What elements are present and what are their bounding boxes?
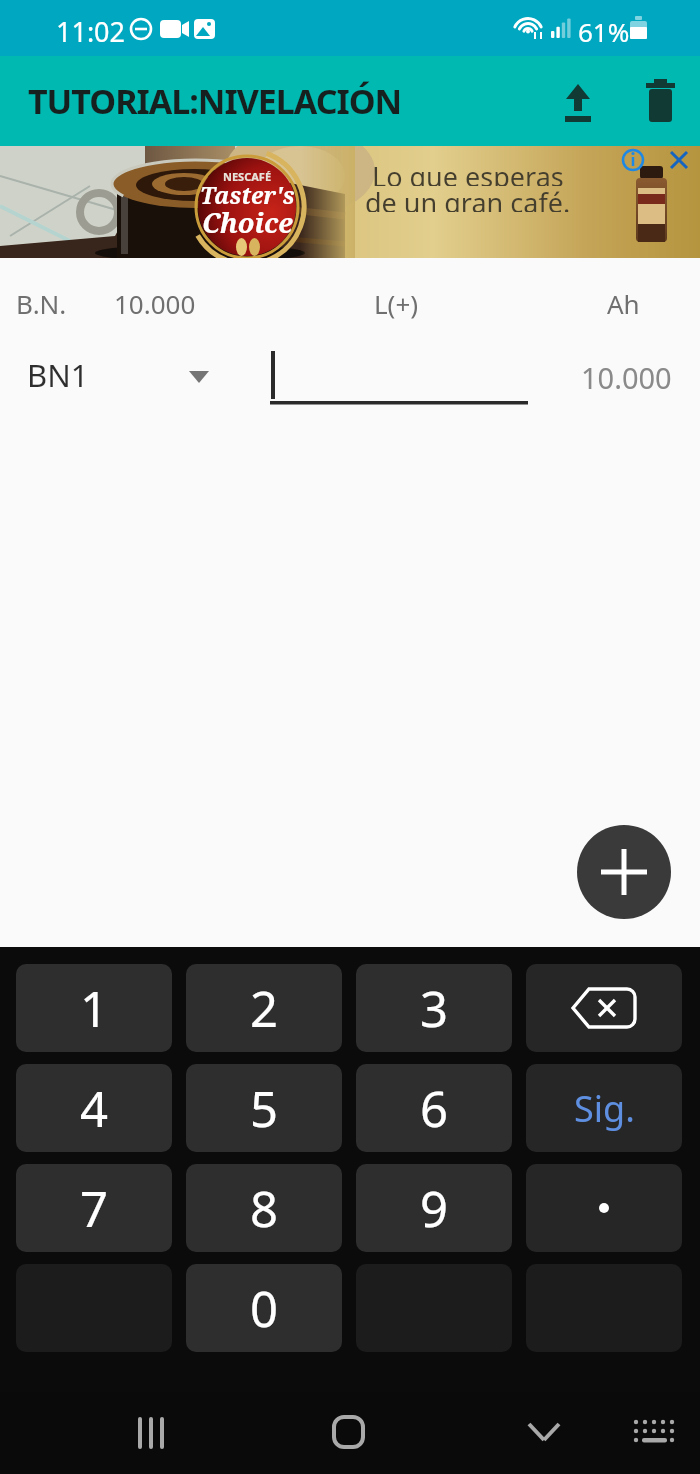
staticText: 5 xyxy=(250,1075,279,1142)
staticText: 6 xyxy=(420,1075,449,1142)
button[interactable]: 8 xyxy=(186,1164,342,1252)
staticText: 3 xyxy=(420,975,449,1042)
staticText: 9 xyxy=(420,1175,449,1242)
button[interactable] xyxy=(516,1410,572,1466)
staticText: 7 xyxy=(80,1175,109,1242)
button[interactable]: 3 xyxy=(356,964,512,1052)
button[interactable] xyxy=(626,1410,682,1466)
button[interactable]: 0 xyxy=(186,1264,342,1352)
button[interactable] xyxy=(320,1410,376,1466)
button[interactable]: 2 xyxy=(186,964,342,1052)
button[interactable] xyxy=(636,76,684,124)
button[interactable]: 5 xyxy=(186,1064,342,1152)
staticText: 10.000 xyxy=(114,286,196,321)
staticText: 61% xyxy=(578,14,630,49)
button[interactable]: 1 xyxy=(16,964,172,1052)
button[interactable]: 4 xyxy=(16,1064,172,1152)
staticText: Ah xyxy=(607,286,640,321)
button[interactable] xyxy=(124,1410,180,1466)
staticText: 8 xyxy=(250,1175,279,1242)
staticText: TUTORIAL:NIVELACIÓN xyxy=(28,78,402,124)
staticText: 2 xyxy=(250,975,279,1042)
button[interactable] xyxy=(526,964,682,1052)
button[interactable]: 9 xyxy=(356,1164,512,1252)
staticText: Sig. xyxy=(574,1084,635,1133)
staticText: 11:02 xyxy=(56,13,126,50)
staticText: 4 xyxy=(80,1075,109,1142)
staticText: 1 xyxy=(80,975,109,1042)
button[interactable]: BN1 xyxy=(16,348,226,398)
button[interactable] xyxy=(526,1164,682,1252)
button[interactable]: NESCAFÉ xyxy=(0,146,700,258)
staticText: B.N. xyxy=(16,286,67,321)
staticText: BN1 xyxy=(27,354,89,396)
staticText: Lo que esperas xyxy=(372,158,564,186)
staticText: 0 xyxy=(250,1275,279,1342)
staticText: Taster's xyxy=(200,179,295,209)
button[interactable]: Sig. xyxy=(526,1064,682,1152)
button[interactable]: 7 xyxy=(16,1164,172,1252)
staticText: 10.000 xyxy=(581,358,672,394)
staticText: Choice xyxy=(202,204,293,236)
button[interactable] xyxy=(554,76,602,124)
staticText: NESCAFÉ xyxy=(223,169,272,184)
staticText: L(+) xyxy=(374,286,419,321)
staticText: de un gran café. xyxy=(365,184,571,212)
button[interactable] xyxy=(577,825,671,919)
button[interactable]: 6 xyxy=(356,1064,512,1152)
